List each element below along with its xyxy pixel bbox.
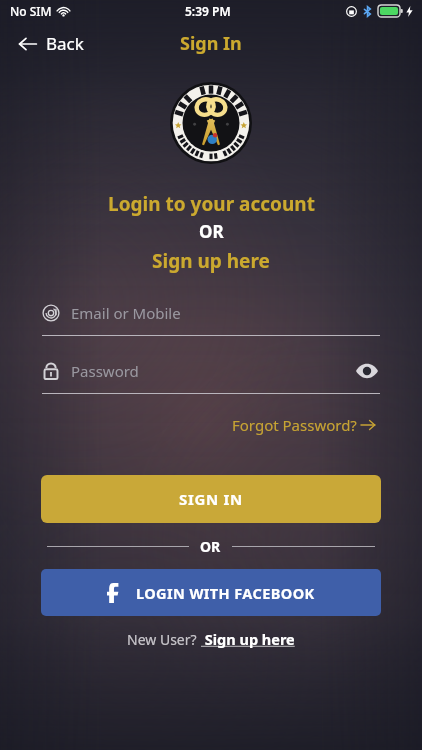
staticText: Sign up here xyxy=(201,629,295,649)
staticText: 5:39 PM xyxy=(185,3,231,19)
other: Mr. Clipper logo xyxy=(170,82,252,164)
staticText: No SIM xyxy=(10,3,52,19)
staticText: Password xyxy=(71,361,139,381)
button[interactable]: Sign up here xyxy=(146,246,276,276)
button[interactable]: Sign up here xyxy=(201,629,295,649)
staticText: Email or Mobile xyxy=(71,303,181,323)
button[interactable]: SIGN IN xyxy=(41,475,381,523)
staticText: New User? xyxy=(127,630,201,649)
staticText: Sign In xyxy=(180,31,242,56)
button[interactable]: Back xyxy=(14,28,88,59)
other: Back xyxy=(18,34,38,54)
staticText: Forgot Password? xyxy=(232,415,357,435)
staticText: LOGIN WITH FACEBOOK xyxy=(136,583,315,603)
staticText: SIGN IN xyxy=(179,489,243,509)
button[interactable]: Password xyxy=(42,356,380,394)
button[interactable]: Show password xyxy=(354,358,380,384)
button[interactable]: LOGIN WITH FACEBOOK xyxy=(41,569,381,616)
staticText: OR xyxy=(199,220,224,243)
staticText: Back xyxy=(46,32,84,55)
button[interactable]: Email or Mobile xyxy=(42,298,380,336)
button[interactable]: Forgot Password? xyxy=(228,411,380,439)
staticText: Sign up here xyxy=(152,248,270,274)
staticText: Login to your account xyxy=(108,191,315,217)
staticText: OR xyxy=(200,537,221,556)
